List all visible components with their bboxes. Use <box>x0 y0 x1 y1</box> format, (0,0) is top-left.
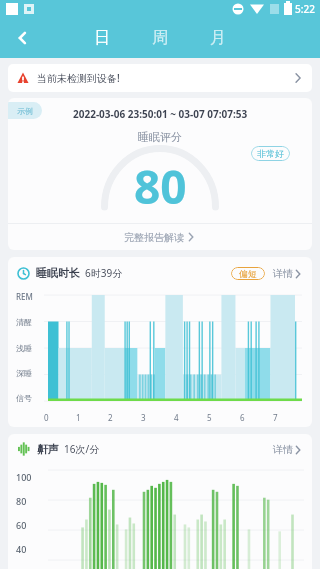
button[interactable]: 当前未检测到设备! <box>8 64 312 92</box>
staticText: 7 <box>273 412 278 423</box>
button[interactable]: 详情 <box>273 443 303 456</box>
staticText: 16次/分 <box>64 442 100 456</box>
staticText: 睡眠时长 <box>36 266 80 280</box>
staticText: 2 <box>108 412 113 423</box>
staticText: 80 <box>134 155 187 207</box>
button[interactable]: 详情 <box>273 267 303 280</box>
staticText: 100 <box>16 471 32 483</box>
staticText: 40 <box>16 543 27 555</box>
staticText: 信号 <box>16 393 32 403</box>
staticText: 周 <box>152 28 168 48</box>
staticText: 6 <box>240 412 245 423</box>
button[interactable]: 日 <box>88 24 116 52</box>
staticText: 1 <box>76 412 81 423</box>
staticText: 4 <box>174 412 179 423</box>
button[interactable]: Back <box>8 23 38 53</box>
staticText: 深睡 <box>16 368 32 378</box>
staticText: 非常好 <box>257 148 284 159</box>
staticText: 示例 <box>17 106 33 116</box>
staticText: 偏短 <box>239 268 257 279</box>
staticText: 2022-03-06 23:50:01 ~ 03-07 07:07:53 <box>73 107 248 121</box>
staticText: 5 <box>207 412 212 423</box>
staticText: 日 <box>94 28 110 48</box>
staticText: 详情 <box>273 267 293 280</box>
staticText: 80 <box>16 495 27 507</box>
staticText: 0 <box>44 412 49 423</box>
staticText: 当前未检测到设备! <box>37 71 120 85</box>
button[interactable]: 月 <box>204 24 232 52</box>
staticText: REM <box>16 291 33 302</box>
staticText: 睡眠评分 <box>138 130 182 144</box>
staticText: 浅睡 <box>16 343 32 353</box>
staticText: 详情 <box>273 443 293 456</box>
staticText: 5:22 <box>295 2 315 16</box>
button[interactable]: 周 <box>146 24 174 52</box>
button[interactable]: 偏短 <box>231 267 265 280</box>
staticText: 清醒 <box>16 317 32 327</box>
staticText: 60 <box>16 519 27 531</box>
staticText: 6时39分 <box>85 266 123 280</box>
staticText: 月 <box>210 28 226 48</box>
staticText: 完整报告解读 <box>124 231 184 244</box>
staticText: 鼾声 <box>37 442 59 456</box>
button[interactable]: 完整报告解读 <box>8 224 312 250</box>
staticText: 3 <box>141 412 146 423</box>
